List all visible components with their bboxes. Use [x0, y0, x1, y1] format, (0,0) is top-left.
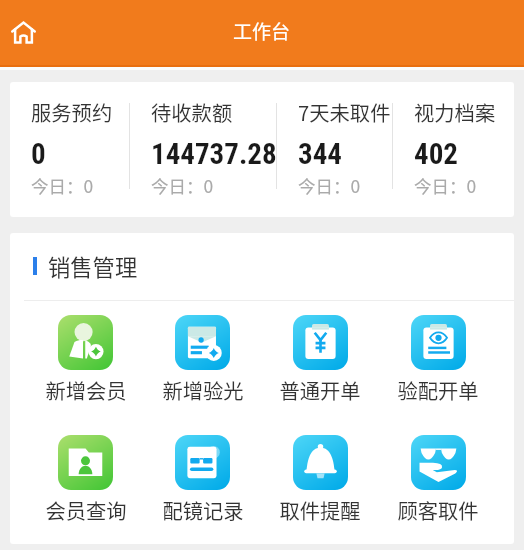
button[interactable]: 配镜记录 [144, 435, 261, 524]
button[interactable]: 新增会员 [27, 315, 144, 404]
button[interactable]: 会员查询 [27, 435, 144, 524]
staticText: 待收款额 [151, 97, 233, 126]
button[interactable]: 顾客取件 [379, 435, 497, 524]
staticText: 会员查询 [45, 495, 127, 524]
staticText: 0 [31, 137, 46, 171]
staticText: 7天未取件 [298, 97, 391, 126]
staticText: 顾客取件 [397, 495, 479, 524]
button[interactable]: 取件提醒 [261, 435, 379, 524]
staticText: 344 [298, 137, 342, 171]
staticText: 工作台 [233, 17, 291, 45]
button[interactable]: 普通开单 [261, 315, 379, 404]
button[interactable]: 新增验光 [144, 315, 261, 404]
staticText: 新增会员 [45, 375, 127, 404]
button[interactable]: Home [3, 12, 43, 52]
staticText: 配镜记录 [162, 495, 244, 524]
staticText: 402 [414, 137, 458, 171]
staticText: 今日：0 [31, 173, 94, 198]
staticText: 今日：0 [151, 173, 214, 198]
button[interactable]: 验配开单 [379, 315, 497, 404]
staticText: 今日：0 [414, 173, 477, 198]
staticText: 144737.28 [151, 137, 276, 171]
staticText: 今日：0 [298, 173, 361, 198]
staticText: 取件提醒 [279, 495, 361, 524]
staticText: 验配开单 [397, 375, 479, 404]
staticText: 普通开单 [279, 375, 361, 404]
staticText: 服务预约 [31, 97, 113, 126]
staticText: 视力档案 [414, 97, 496, 126]
staticText: 新增验光 [162, 375, 244, 404]
staticText: 销售管理 [48, 250, 138, 282]
